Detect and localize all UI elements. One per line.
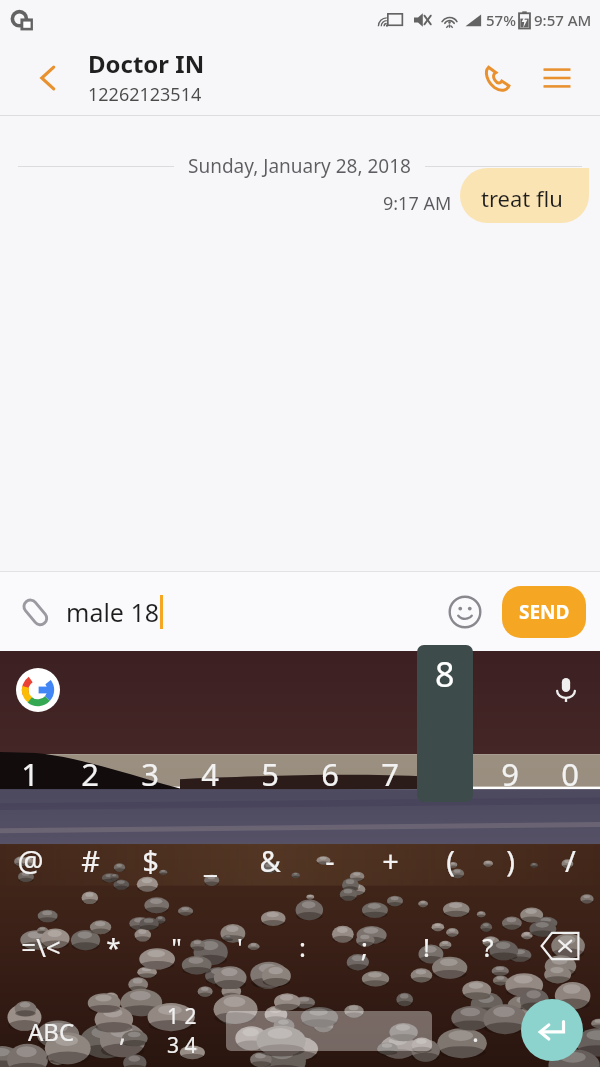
- button[interactable]: SEND: [502, 586, 586, 638]
- button[interactable]: Google: [13, 665, 63, 715]
- button[interactable]: ?: [457, 913, 519, 979]
- staticText: ;: [361, 929, 368, 964]
- staticText: 9: [501, 753, 519, 795]
- staticText: 0: [561, 753, 579, 795]
- staticText: !: [423, 929, 430, 964]
- staticText: SEND: [519, 599, 570, 625]
- button[interactable]: Backspace: [519, 913, 600, 979]
- button[interactable]: @: [0, 827, 60, 893]
- staticText: ?: [482, 929, 494, 964]
- button[interactable]: Voice input: [542, 666, 590, 714]
- staticText: 57%: [486, 10, 516, 30]
- staticText: (: [446, 841, 455, 880]
- button[interactable]: 1: [0, 741, 60, 807]
- staticText: 4: [201, 753, 219, 795]
- button[interactable]: 7: [360, 741, 420, 807]
- staticText: :: [299, 929, 306, 964]
- button[interactable]: 8: [420, 741, 480, 807]
- button[interactable]: ": [145, 913, 208, 979]
- staticText: &: [259, 841, 281, 880]
- staticText: 1 2: [167, 1002, 197, 1031]
- button[interactable]: -: [300, 827, 360, 893]
- staticText: 12262123514: [88, 82, 202, 107]
- button[interactable]: Enter: [521, 999, 583, 1061]
- staticText: Sunday, January 28, 2018: [188, 153, 411, 179]
- staticText: *: [106, 929, 121, 964]
- button[interactable]: Menu: [530, 51, 584, 105]
- staticText: $: [142, 841, 159, 880]
- button[interactable]: Call: [470, 51, 524, 105]
- button[interactable]: 9: [480, 741, 540, 807]
- button[interactable]: #: [60, 827, 120, 893]
- staticText: 8: [435, 651, 455, 697]
- button[interactable]: 6: [300, 741, 360, 807]
- button[interactable]: 3: [120, 741, 180, 807]
- staticText: ": [171, 929, 182, 964]
- button[interactable]: Number keypad: [150, 995, 214, 1067]
- button[interactable]: Attach file: [8, 585, 62, 639]
- staticText: 7: [381, 753, 399, 795]
- button[interactable]: +: [360, 827, 420, 893]
- staticText: treat flu: [481, 183, 563, 213]
- staticText: 2: [81, 753, 99, 795]
- button[interactable]: ': [208, 913, 271, 979]
- button[interactable]: :: [271, 913, 333, 979]
- staticText: ): [506, 841, 515, 880]
- button[interactable]: Emoji: [442, 589, 488, 635]
- staticText: 3: [141, 753, 159, 795]
- button[interactable]: 5: [240, 741, 300, 807]
- staticText: male 18: [66, 595, 160, 629]
- staticText: 3 4: [167, 1031, 197, 1060]
- button[interactable]: _: [180, 827, 240, 893]
- staticText: 5: [261, 753, 279, 795]
- button[interactable]: &: [240, 827, 300, 893]
- staticText: ABC: [28, 1015, 75, 1048]
- button[interactable]: 4: [180, 741, 240, 807]
- button[interactable]: ;: [333, 913, 395, 979]
- button[interactable]: treat flu: [460, 168, 589, 223]
- button[interactable]: /: [540, 827, 600, 893]
- staticText: +: [382, 841, 399, 880]
- staticText: 9:17 AM: [383, 191, 452, 216]
- staticText: /: [565, 841, 576, 880]
- button[interactable]: Back: [22, 52, 74, 104]
- staticText: 1: [21, 753, 39, 795]
- button[interactable]: (: [420, 827, 480, 893]
- button[interactable]: ): [480, 827, 540, 893]
- button[interactable]: 0: [540, 741, 600, 807]
- staticText: ': [237, 929, 243, 964]
- staticText: _: [204, 841, 217, 880]
- button[interactable]: $: [120, 827, 180, 893]
- other: Backspace: [540, 931, 580, 961]
- staticText: Doctor IN: [88, 47, 205, 80]
- staticText: .: [472, 1014, 479, 1049]
- staticText: @: [17, 841, 44, 880]
- button[interactable]: 2: [60, 741, 120, 807]
- button[interactable]: !: [395, 913, 457, 979]
- staticText: #: [81, 841, 100, 880]
- staticText: -: [325, 841, 335, 880]
- button[interactable]: *: [82, 913, 145, 979]
- button[interactable]: ,: [98, 995, 146, 1067]
- button[interactable]: ABC: [8, 995, 94, 1067]
- staticText: =\<: [21, 929, 61, 964]
- staticText: 9:57 AM: [534, 10, 592, 30]
- staticText: 6: [321, 753, 339, 795]
- button[interactable]: =\<: [0, 913, 82, 979]
- button[interactable]: .: [446, 995, 504, 1067]
- staticText: ,: [119, 1014, 126, 1049]
- button[interactable]: Space: [226, 1011, 432, 1051]
